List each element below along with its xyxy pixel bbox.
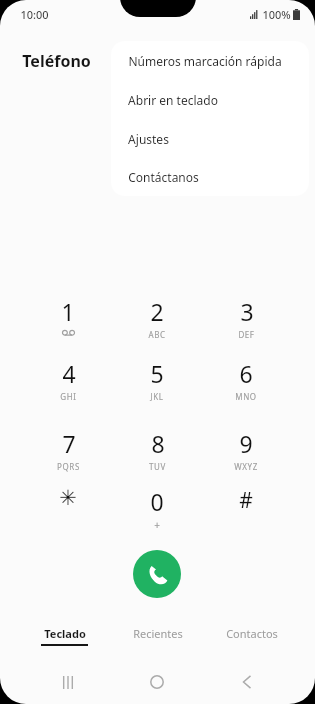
staticText: 3 bbox=[240, 296, 254, 327]
button[interactable]: 1 bbox=[34, 296, 102, 344]
staticText: 6 bbox=[239, 358, 253, 389]
staticText: Contáctanos bbox=[128, 169, 199, 185]
staticText: Contactos bbox=[226, 626, 278, 641]
staticText: # bbox=[239, 486, 253, 515]
staticText: 2 bbox=[150, 296, 164, 327]
staticText: TUV bbox=[149, 461, 166, 472]
button[interactable]: 0 bbox=[123, 486, 191, 534]
staticText: Abrir en teclado bbox=[128, 92, 218, 108]
staticText: 10:00 bbox=[20, 7, 49, 22]
staticText: JKL bbox=[150, 391, 164, 402]
button[interactable]: 8 bbox=[123, 428, 191, 476]
button[interactable]: Recents bbox=[48, 662, 88, 702]
staticText: WXYZ bbox=[234, 461, 258, 472]
staticText: PQRS bbox=[57, 461, 80, 472]
button[interactable]: Back bbox=[227, 662, 267, 702]
staticText: 8 bbox=[151, 428, 165, 459]
staticText: 4 bbox=[62, 358, 76, 389]
staticText: + bbox=[154, 518, 160, 532]
button[interactable]: 4 bbox=[34, 358, 102, 406]
button[interactable]: Ajustes bbox=[111, 119, 309, 158]
staticText: ✳ bbox=[59, 486, 77, 510]
staticText: MNO bbox=[235, 391, 257, 402]
staticText: Recientes bbox=[133, 626, 183, 641]
staticText: Teclado bbox=[44, 626, 86, 641]
button[interactable]: Abrir en teclado bbox=[111, 80, 309, 119]
staticText: 9 bbox=[239, 428, 253, 459]
button[interactable]: # bbox=[212, 486, 280, 534]
button[interactable]: Recientes bbox=[114, 626, 202, 656]
button[interactable]: 2 bbox=[123, 296, 191, 344]
staticText: 1 bbox=[61, 296, 75, 327]
button[interactable]: 9 bbox=[212, 428, 280, 476]
staticText: Números marcación rápida bbox=[128, 53, 282, 69]
staticText: Teléfono bbox=[22, 50, 91, 72]
button[interactable]: Números marcación rápida bbox=[111, 41, 309, 80]
staticText: ABC bbox=[148, 329, 166, 340]
button[interactable]: Contactos bbox=[208, 626, 296, 656]
staticText: 7 bbox=[62, 428, 76, 459]
button[interactable]: ✳ bbox=[34, 486, 102, 534]
staticText: GHI bbox=[60, 391, 77, 402]
button[interactable]: Teclado bbox=[20, 626, 108, 656]
button[interactable]: 3 bbox=[212, 296, 280, 344]
button[interactable]: 5 bbox=[123, 358, 191, 406]
staticText: 0 bbox=[150, 486, 164, 517]
button[interactable]: 6 bbox=[212, 358, 280, 406]
staticText: DEF bbox=[238, 329, 255, 340]
staticText: 5 bbox=[150, 358, 164, 389]
button[interactable]: Contáctanos bbox=[111, 158, 309, 196]
button[interactable]: 7 bbox=[34, 428, 102, 476]
staticText: Ajustes bbox=[128, 131, 169, 147]
button[interactable]: Call bbox=[133, 550, 181, 598]
staticText: 100% bbox=[262, 7, 291, 22]
button[interactable]: Home bbox=[137, 662, 177, 702]
